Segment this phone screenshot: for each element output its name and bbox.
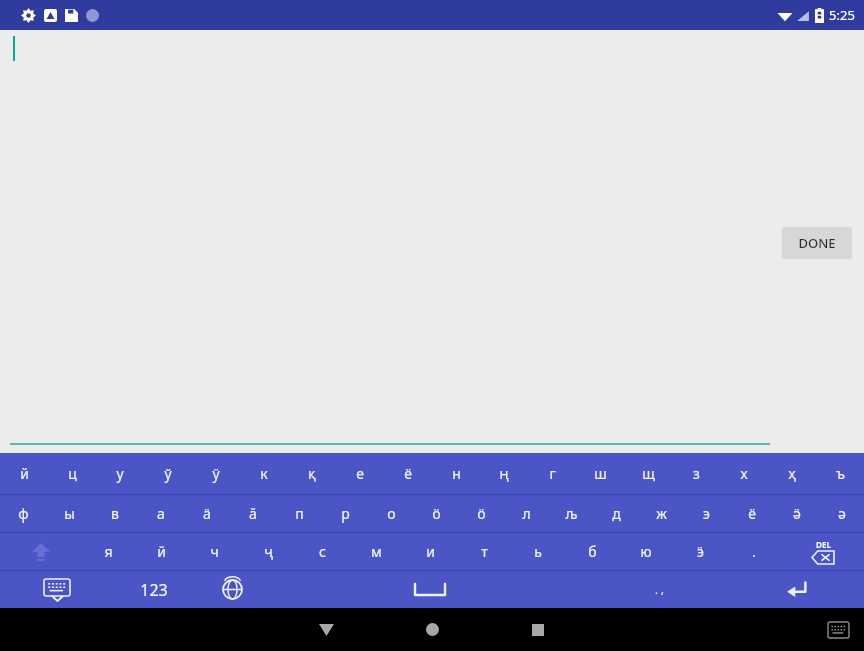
button[interactable]: ю bbox=[619, 533, 673, 570]
button[interactable]: ӑ bbox=[230, 495, 276, 532]
button[interactable]: Home bbox=[379, 608, 485, 651]
staticText: ь bbox=[534, 542, 542, 561]
button[interactable]: ч bbox=[188, 533, 241, 570]
button[interactable]: қ bbox=[288, 453, 336, 494]
button[interactable]: Hide keyboard bbox=[0, 571, 114, 608]
button[interactable]: ӛ bbox=[774, 495, 819, 532]
button[interactable]: Shift bbox=[0, 533, 82, 570]
button[interactable]: ӭ bbox=[673, 533, 727, 570]
staticText: з bbox=[693, 464, 700, 483]
button[interactable]: ö bbox=[459, 495, 504, 532]
staticText: ӑ bbox=[249, 504, 257, 523]
button[interactable]: е bbox=[336, 453, 384, 494]
staticText: ў bbox=[164, 464, 172, 483]
button[interactable]: к bbox=[240, 453, 288, 494]
button[interactable]: л bbox=[504, 495, 549, 532]
staticText: н bbox=[452, 464, 461, 483]
button[interactable]: г bbox=[528, 453, 576, 494]
staticText: ш bbox=[594, 464, 607, 483]
button[interactable]: ъ bbox=[816, 453, 864, 494]
staticText: х bbox=[740, 464, 748, 483]
button[interactable]: Back bbox=[273, 608, 379, 651]
button[interactable]: ÿ bbox=[192, 453, 240, 494]
button[interactable]: ҳ bbox=[768, 453, 816, 494]
button[interactable]: я bbox=[82, 533, 135, 570]
staticText: в bbox=[111, 504, 119, 523]
button[interactable]: й bbox=[135, 533, 188, 570]
button[interactable]: ң bbox=[480, 453, 528, 494]
button[interactable]: Switch keyboard bbox=[826, 620, 850, 640]
staticText: щ bbox=[642, 464, 655, 483]
button[interactable]: ӧ bbox=[414, 495, 459, 532]
button[interactable]: д bbox=[594, 495, 639, 532]
staticText: DEL bbox=[816, 539, 831, 550]
staticText: ä bbox=[203, 504, 211, 523]
button[interactable]: Change language bbox=[193, 571, 272, 608]
button[interactable]: п bbox=[276, 495, 322, 532]
button[interactable]: . bbox=[727, 533, 781, 570]
button[interactable]: ь bbox=[511, 533, 565, 570]
button[interactable]: ф bbox=[0, 495, 46, 532]
staticText: . bbox=[752, 542, 756, 561]
button[interactable]: о bbox=[368, 495, 414, 532]
button[interactable]: ҷ bbox=[241, 533, 295, 570]
staticText: DONE bbox=[798, 234, 836, 252]
button[interactable]: э bbox=[684, 495, 729, 532]
staticText: п bbox=[295, 504, 304, 523]
staticText: қ bbox=[308, 464, 316, 483]
staticText: ә bbox=[838, 504, 846, 523]
button[interactable]: й bbox=[0, 453, 48, 494]
button[interactable]: в bbox=[92, 495, 138, 532]
button[interactable]: у bbox=[96, 453, 144, 494]
button[interactable]: м bbox=[349, 533, 403, 570]
staticText: и bbox=[426, 542, 435, 561]
staticText: у bbox=[116, 464, 124, 483]
staticText: ö bbox=[477, 504, 486, 523]
button[interactable]: х bbox=[720, 453, 768, 494]
button[interactable]: ы bbox=[46, 495, 92, 532]
staticText: ÿ bbox=[212, 464, 220, 483]
staticText: к bbox=[260, 464, 268, 483]
button[interactable]: Delete bbox=[781, 533, 864, 570]
staticText: ё bbox=[748, 504, 756, 523]
button[interactable]: љ bbox=[549, 495, 594, 532]
button[interactable]: т bbox=[457, 533, 511, 570]
button[interactable]: ш bbox=[576, 453, 624, 494]
staticText: ҳ bbox=[788, 464, 796, 483]
staticText: ы bbox=[64, 504, 75, 523]
staticText: я bbox=[104, 542, 113, 561]
staticText: л bbox=[522, 504, 531, 523]
button[interactable]: ё bbox=[729, 495, 774, 532]
button[interactable]: ё bbox=[384, 453, 432, 494]
staticText: ӭ bbox=[697, 542, 704, 561]
staticText: ҷ bbox=[264, 542, 273, 561]
button[interactable]: ә bbox=[819, 495, 864, 532]
button[interactable]: . , bbox=[588, 571, 730, 608]
staticText: р bbox=[341, 504, 350, 523]
button[interactable]: Enter bbox=[730, 571, 864, 608]
staticText: . , bbox=[655, 582, 664, 597]
staticText: с bbox=[319, 542, 326, 561]
button[interactable]: Space bbox=[272, 571, 588, 608]
button[interactable]: щ bbox=[624, 453, 672, 494]
button[interactable]: Recents bbox=[485, 608, 591, 651]
button[interactable]: б bbox=[565, 533, 619, 570]
button[interactable]: ў bbox=[144, 453, 192, 494]
button[interactable]: р bbox=[322, 495, 368, 532]
button[interactable]: н bbox=[432, 453, 480, 494]
button[interactable]: ц bbox=[48, 453, 96, 494]
staticText: ю bbox=[640, 542, 652, 561]
button[interactable]: DONE bbox=[782, 227, 852, 259]
button[interactable]: с bbox=[295, 533, 349, 570]
button[interactable]: 123 bbox=[114, 571, 193, 608]
staticText: й bbox=[157, 542, 166, 561]
button[interactable]: ä bbox=[184, 495, 230, 532]
button[interactable]: ж bbox=[639, 495, 684, 532]
staticText: ё bbox=[404, 464, 412, 483]
button[interactable]: з bbox=[672, 453, 720, 494]
button[interactable]: и bbox=[403, 533, 457, 570]
button[interactable]: а bbox=[138, 495, 184, 532]
staticText: г bbox=[549, 464, 556, 483]
staticText: ӧ bbox=[432, 504, 441, 523]
staticText: љ bbox=[565, 504, 578, 523]
